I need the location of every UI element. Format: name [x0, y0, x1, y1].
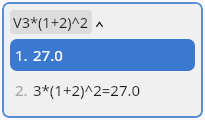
- button[interactable]: 1.: [10, 39, 195, 71]
- staticText: V3*(1+2)^2: [13, 12, 89, 32]
- staticText: 1.: [15, 45, 28, 65]
- staticText: 2.: [15, 80, 28, 100]
- other: Cursor: [96, 14, 103, 30]
- button[interactable]: V3*(1+2)^2: [2, 9, 203, 35]
- button[interactable]: 2.: [10, 75, 195, 105]
- staticText: 3*(1+2)^2=27.0: [33, 80, 141, 100]
- staticText: 27.0: [33, 45, 63, 65]
